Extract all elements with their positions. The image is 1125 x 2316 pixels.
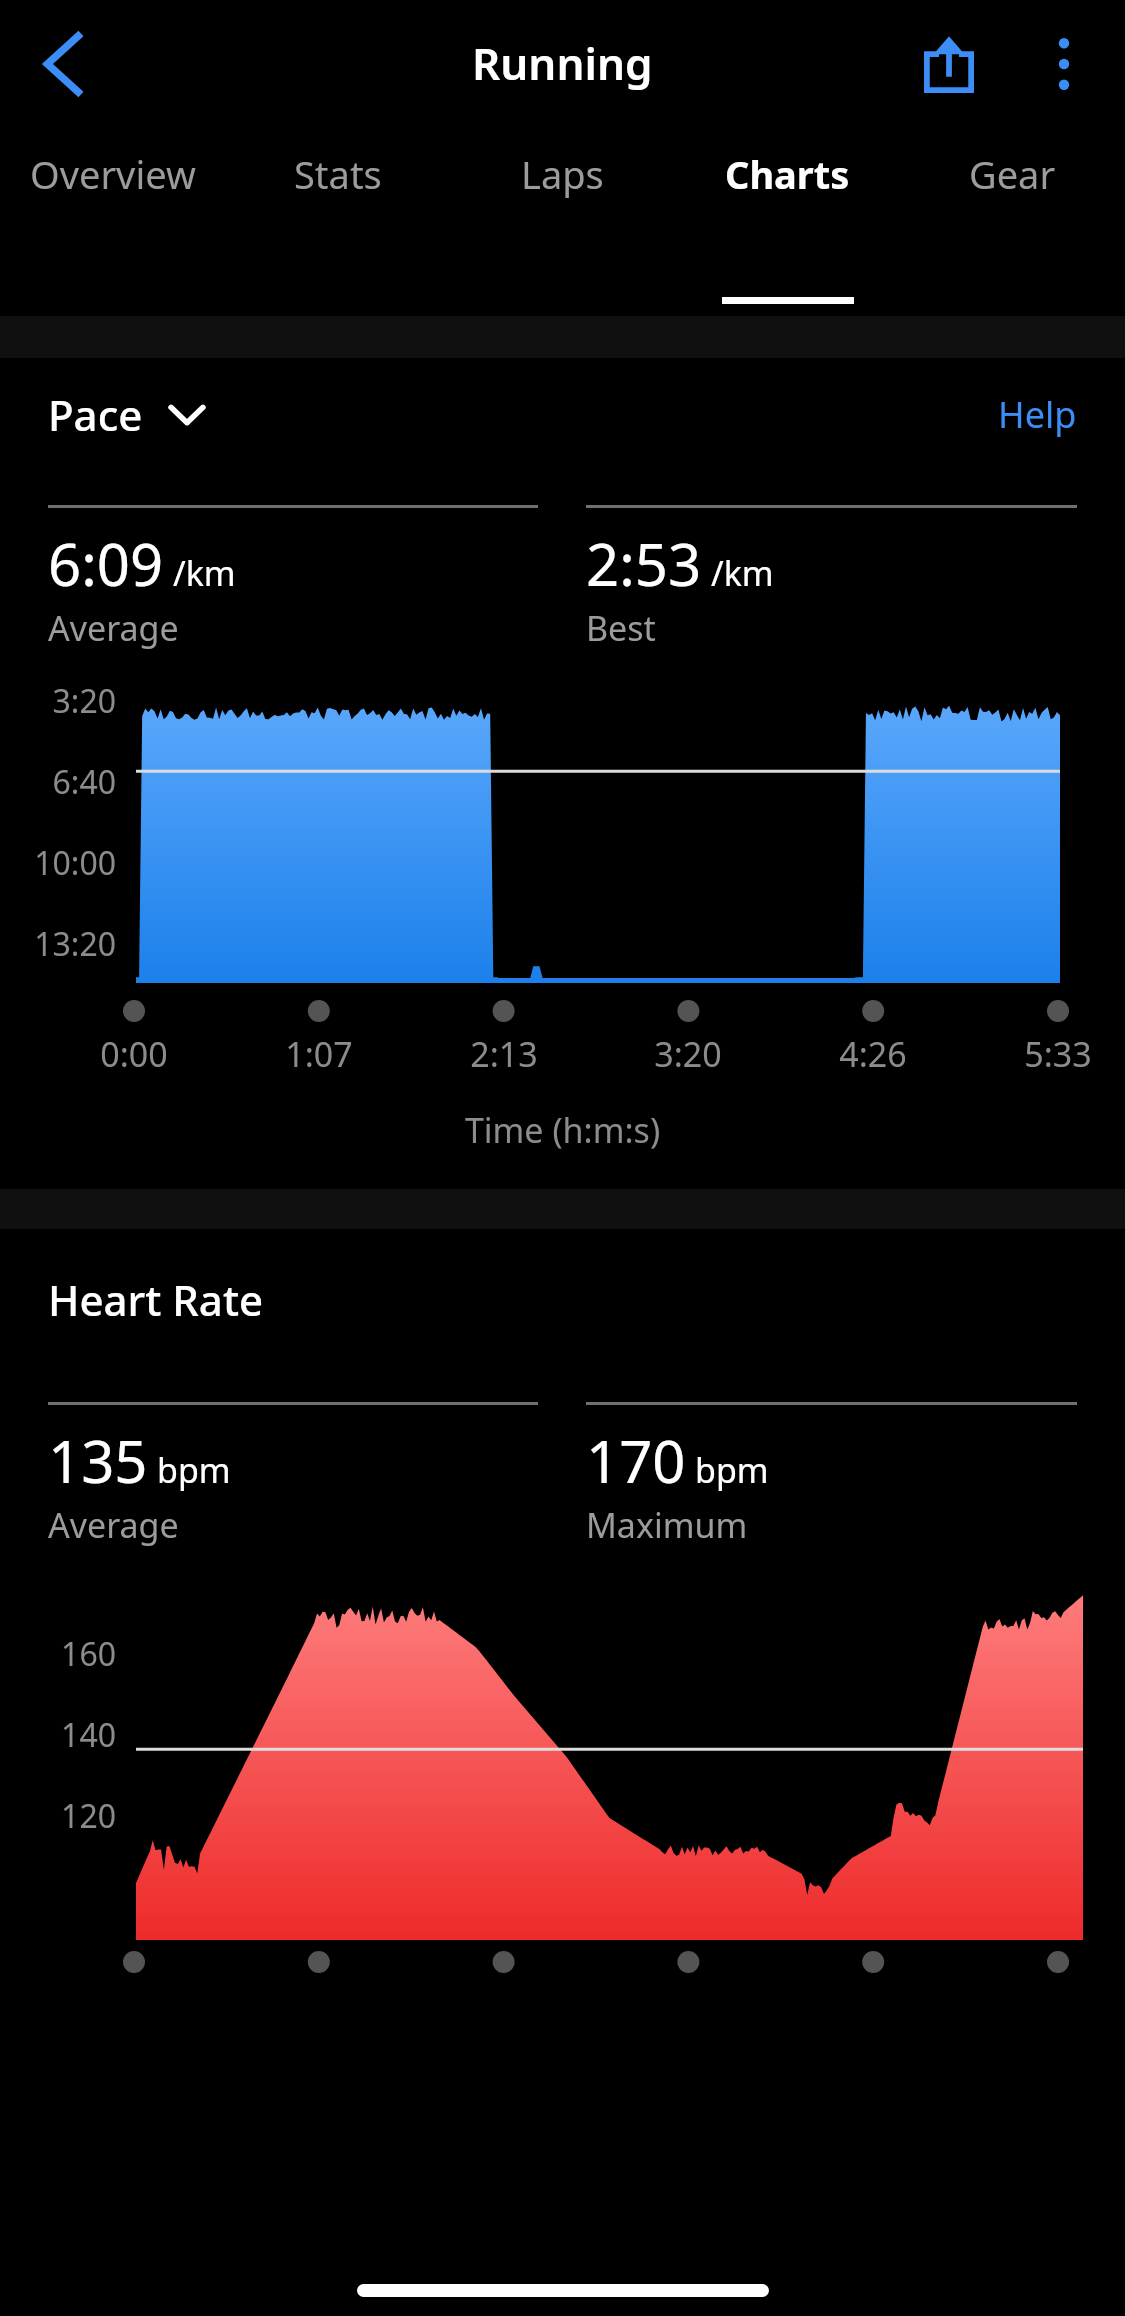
staticText: bpm — [695, 1447, 769, 1493]
button[interactable]: Help — [998, 390, 1077, 439]
staticText: Stats — [294, 148, 382, 200]
staticText: 0:00 — [59, 1031, 209, 1077]
staticText: 3:20 — [0, 679, 116, 723]
staticText: Running — [472, 33, 653, 93]
staticText: Best — [586, 605, 656, 651]
staticText: Time (h:m:s) — [0, 1107, 1125, 1153]
staticText: 5:33 — [983, 1031, 1125, 1077]
staticText: 6:40 — [0, 760, 116, 804]
staticText: /km — [173, 550, 236, 596]
staticText: Average — [48, 1502, 179, 1548]
staticText: Maximum — [586, 1502, 748, 1548]
staticText: Help — [998, 390, 1077, 439]
staticText: 160 — [0, 1632, 116, 1676]
staticText: Heart Rate — [48, 1271, 264, 1328]
staticText: Laps — [521, 148, 604, 200]
staticText: Pace — [48, 386, 143, 443]
button[interactable]: Pace — [48, 386, 205, 443]
button[interactable]: Charts — [675, 128, 900, 316]
button[interactable]: Gear — [900, 128, 1125, 316]
staticText: 140 — [0, 1713, 116, 1757]
staticText: 1:07 — [244, 1031, 394, 1077]
staticText: 170 — [586, 1421, 686, 1500]
staticText: 6:09 — [48, 524, 164, 603]
staticText: Gear — [969, 148, 1056, 200]
staticText: 10:00 — [0, 841, 116, 885]
button[interactable]: Back — [20, 19, 110, 109]
button[interactable]: Laps — [450, 128, 675, 316]
button[interactable]: Share — [901, 16, 997, 112]
staticText: 13:20 — [0, 922, 116, 966]
button[interactable]: Overview — [0, 128, 225, 316]
staticText: 3:20 — [613, 1031, 763, 1077]
staticText: Average — [48, 605, 179, 651]
staticText: Overview — [30, 148, 196, 200]
staticText: 2:13 — [429, 1031, 579, 1077]
staticText: bpm — [157, 1447, 231, 1493]
button[interactable]: Stats — [225, 128, 450, 316]
staticText: /km — [711, 550, 774, 596]
staticText: 135 — [48, 1421, 148, 1500]
staticText: 120 — [0, 1794, 116, 1838]
button[interactable]: More options — [1019, 19, 1109, 109]
staticText: Charts — [725, 148, 850, 200]
staticText: 4:26 — [798, 1031, 948, 1077]
staticText: 2:53 — [586, 524, 702, 603]
